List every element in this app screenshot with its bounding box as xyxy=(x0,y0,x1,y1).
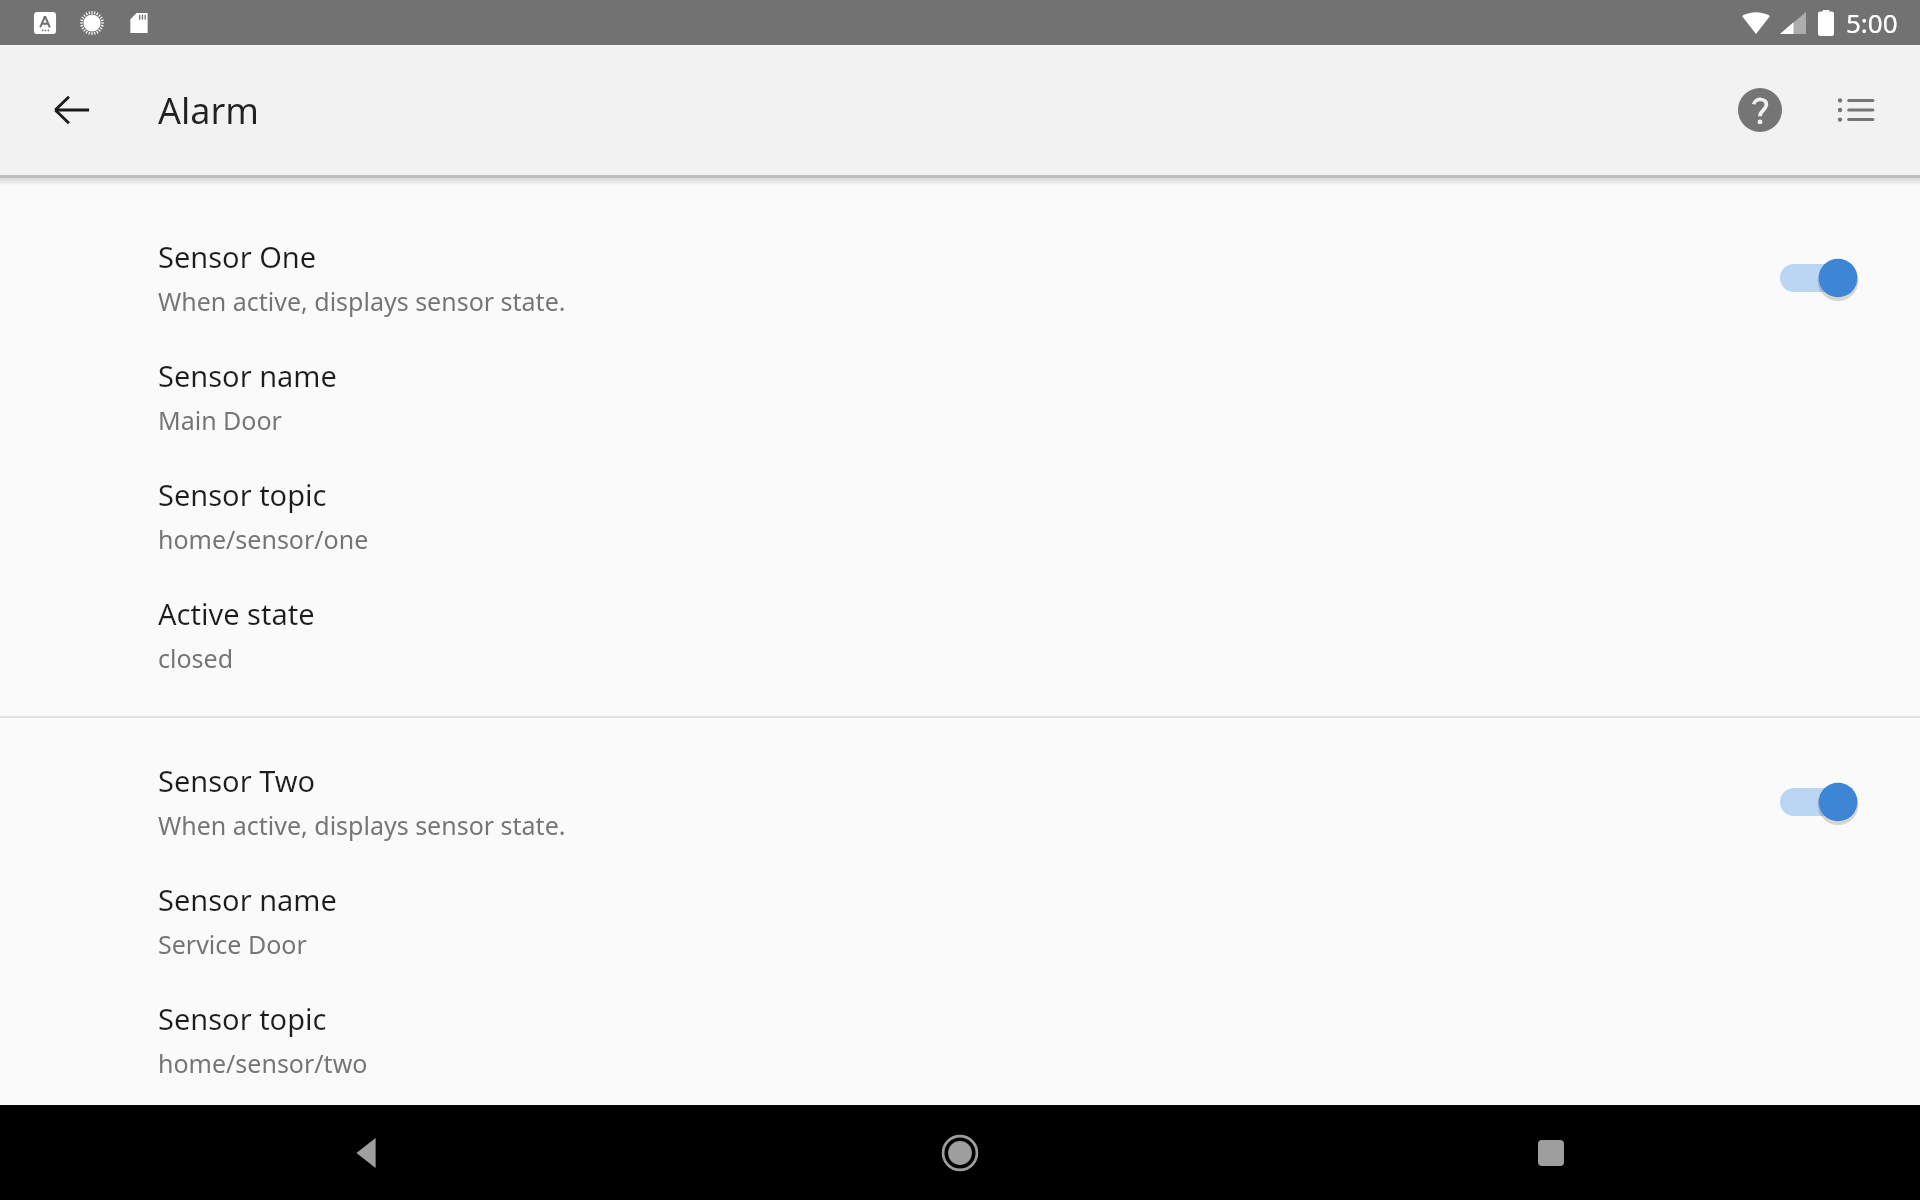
staticText: Sensor name xyxy=(158,880,337,919)
button[interactable]: Toggle xyxy=(1780,774,1864,830)
button[interactable]: Back xyxy=(327,1111,411,1195)
button[interactable]: Sensor topic xyxy=(0,456,1920,575)
staticText: Service Door xyxy=(158,927,307,961)
button[interactable]: Sensor Two xyxy=(0,742,1920,861)
staticText: 5:00 xyxy=(1846,5,1898,40)
staticText: Sensor topic xyxy=(158,999,327,1038)
staticText: home/sensor/two xyxy=(158,1046,368,1080)
button[interactable]: Navigate up xyxy=(40,78,104,142)
staticText: home/sensor/one xyxy=(158,522,369,556)
button[interactable]: Help xyxy=(1724,74,1796,146)
staticText: Sensor topic xyxy=(158,475,327,514)
button[interactable]: Toggle xyxy=(1780,250,1864,306)
button[interactable]: Sensor name xyxy=(0,337,1920,456)
staticText: Sensor Two xyxy=(158,761,316,800)
button[interactable]: Active state xyxy=(0,575,1920,694)
button[interactable]: Recent apps xyxy=(1509,1111,1593,1195)
button[interactable]: Home xyxy=(918,1111,1002,1195)
staticText: closed xyxy=(158,641,234,675)
staticText: When active, displays sensor state. xyxy=(158,284,566,318)
staticText: Alarm xyxy=(158,86,260,135)
button[interactable]: More options xyxy=(1820,74,1892,146)
staticText: When active, displays sensor state. xyxy=(158,808,566,842)
staticText: Sensor One xyxy=(158,237,317,276)
button[interactable]: Sensor name xyxy=(0,861,1920,980)
button[interactable]: Sensor topic xyxy=(0,980,1920,1099)
button[interactable]: Sensor One xyxy=(0,218,1920,337)
staticText: Main Door xyxy=(158,403,282,437)
staticText: Sensor name xyxy=(158,356,337,395)
staticText: Active state xyxy=(158,594,315,633)
